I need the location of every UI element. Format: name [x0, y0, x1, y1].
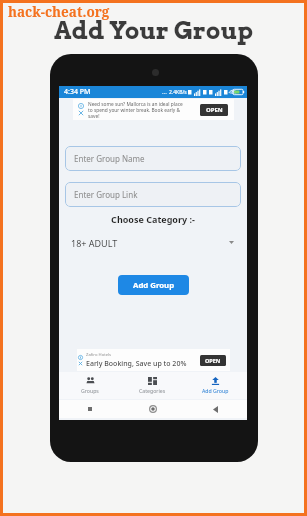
staticText: Add Group [202, 387, 229, 394]
staticText: Add Group [133, 280, 175, 291]
button[interactable]: Back [213, 406, 218, 413]
button[interactable]: Add Group [118, 275, 189, 295]
staticText: Add Your Group [54, 16, 253, 45]
button[interactable]: Zafiro Hotels [77, 349, 230, 371]
staticText: Enter Group Name [74, 153, 145, 164]
button[interactable]: Need some sun? Mallorca is an ideal plac… [73, 99, 234, 120]
button[interactable]: 18+ ADULT [59, 234, 247, 251]
staticText: OPEN [205, 357, 221, 364]
staticText: hack-cheat.org [8, 3, 110, 21]
button[interactable]: Home [149, 405, 157, 413]
staticText: 4:34 PM [64, 87, 91, 97]
staticText: Enter Group Link [74, 189, 138, 200]
staticText: 18+ ADULT [71, 237, 118, 249]
staticText: OPEN [206, 106, 223, 114]
button[interactable]: OPEN [200, 104, 228, 116]
staticText: Choose Category :- [59, 213, 247, 225]
staticText: 2.4KB/s [169, 89, 187, 96]
button[interactable]: Add Group [184, 372, 247, 399]
staticText: ... [162, 88, 167, 96]
button[interactable]: OPEN [200, 355, 226, 366]
button[interactable]: Enter Group Link [65, 182, 241, 207]
staticText: Need some sun? Mallorca is an ideal plac… [88, 101, 185, 119]
staticText: Groups [81, 387, 99, 394]
button[interactable]: Groups [59, 372, 121, 399]
staticText: Zafiro Hotels [86, 352, 112, 358]
button[interactable]: Enter Group Name [65, 146, 241, 171]
staticText: Categories [139, 387, 166, 394]
staticText: Early Booking, Save up to 20% [86, 359, 187, 369]
button[interactable]: Categories [121, 372, 184, 399]
